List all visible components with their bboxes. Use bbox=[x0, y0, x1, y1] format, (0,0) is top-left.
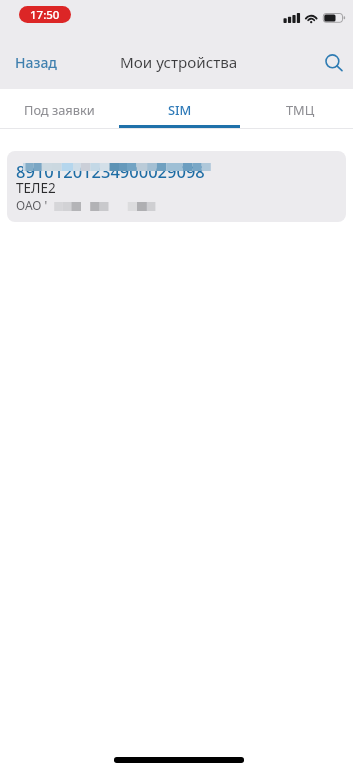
staticText: SIM bbox=[168, 101, 192, 118]
button[interactable]: 89101201234900029098 bbox=[7, 151, 346, 222]
staticText: 89101201234900029098 bbox=[16, 160, 205, 182]
staticText: ОАО ' bbox=[16, 197, 48, 213]
staticText: ТЕЛЕ2 bbox=[16, 179, 56, 197]
button[interactable]: ТМЦ bbox=[240, 89, 353, 129]
staticText: Назад bbox=[15, 53, 57, 72]
button[interactable]: SIM bbox=[119, 89, 240, 129]
staticText: ТМЦ bbox=[286, 101, 315, 118]
staticText: Мои устройства bbox=[120, 52, 238, 73]
staticText: Под заявки bbox=[24, 101, 95, 118]
button[interactable]: Search bbox=[316, 45, 353, 83]
button[interactable]: Назад bbox=[5, 47, 67, 78]
button[interactable]: Под заявки bbox=[0, 89, 120, 129]
staticText: 17:50 bbox=[30, 7, 60, 23]
